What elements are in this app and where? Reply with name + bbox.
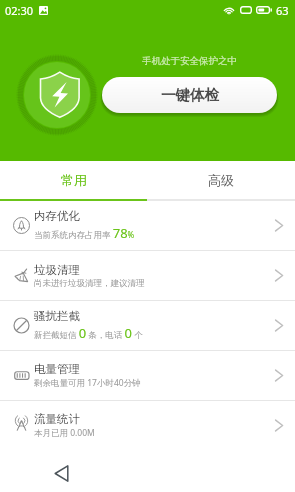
staticText: 当前系统内存占用率 78% <box>34 224 135 242</box>
staticText: 63 <box>276 3 289 18</box>
staticText: 02:30 <box>5 3 34 18</box>
button[interactable]: 一键体检 <box>102 77 277 113</box>
staticText: 一键体检 <box>161 86 219 104</box>
staticText: 剩余电量可用 17小时40分钟 <box>34 377 141 389</box>
button[interactable]: 常用 <box>0 161 147 199</box>
staticText: 尚未进行垃圾清理，建议清理 <box>34 278 145 289</box>
staticText: 手机处于安全保护之中 <box>142 55 237 67</box>
staticText: 电量管理 <box>34 362 80 376</box>
button[interactable]: 电量管理 <box>0 351 295 400</box>
button[interactable]: 高级 <box>147 161 295 199</box>
staticText: 高级 <box>208 172 234 188</box>
button[interactable]: 流量统计 <box>0 401 295 450</box>
button[interactable]: 内存优化 <box>0 201 295 250</box>
staticText: 垃圾清理 <box>34 263 80 277</box>
staticText: 内存优化 <box>34 209 80 223</box>
staticText: 新拦截短信 0 条，电话 0 个 <box>34 324 143 342</box>
button[interactable]: 垃圾清理 <box>0 251 295 300</box>
staticText: 流量统计 <box>34 412 80 426</box>
staticText: 本月已用 0.00M <box>34 427 95 439</box>
staticText: 常用 <box>61 172 87 188</box>
button[interactable]: Back <box>45 457 77 489</box>
button[interactable]: 骚扰拦截 <box>0 301 295 350</box>
staticText: 骚扰拦截 <box>34 309 80 323</box>
